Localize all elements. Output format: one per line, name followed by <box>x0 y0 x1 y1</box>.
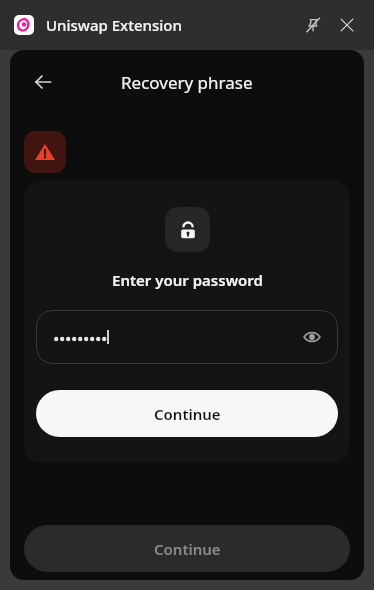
button[interactable]: Continue <box>24 525 350 572</box>
staticText: Continue <box>154 539 221 559</box>
button[interactable]: Close <box>334 12 360 38</box>
button[interactable]: Continue <box>36 390 338 437</box>
staticText: Enter your password <box>112 270 263 290</box>
staticText: Recovery phrase <box>121 71 253 94</box>
staticText: Uniswap Extension <box>46 15 182 35</box>
button[interactable]: Back <box>26 65 60 99</box>
button[interactable]: Show password <box>36 310 338 364</box>
staticText: Continue <box>154 404 221 424</box>
button[interactable]: Unpin extension <box>300 12 326 38</box>
button[interactable]: Show password <box>300 325 324 349</box>
